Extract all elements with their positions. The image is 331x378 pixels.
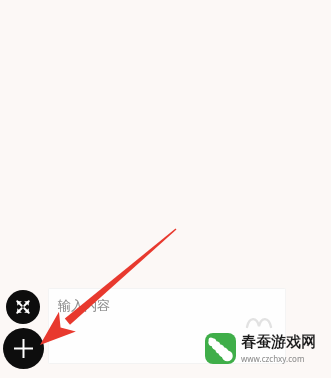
- button[interactable]: Add: [3, 328, 44, 369]
- button[interactable]: 输入内容: [48, 288, 286, 364]
- staticText: www.czchxy.com: [241, 353, 305, 364]
- button[interactable]: Fullscreen: [6, 290, 40, 324]
- staticText: 输入内容: [58, 297, 110, 313]
- staticText: 春蚕游戏网: [241, 333, 316, 352]
